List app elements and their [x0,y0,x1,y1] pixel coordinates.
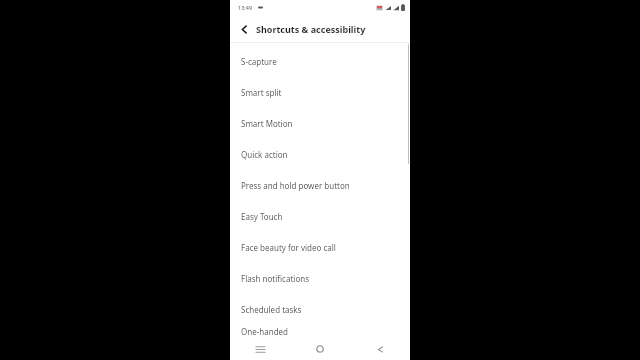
button[interactable]: Smart split [230,77,410,108]
staticText: 13:49 [238,4,253,11]
staticText: Easy Touch [241,211,283,222]
button[interactable]: Back [350,338,410,360]
button[interactable]: One-handed [230,325,410,338]
button[interactable]: Face beauty for video call [230,232,410,263]
button[interactable]: Home [290,338,350,360]
staticText: Flash notifications [241,273,310,284]
button[interactable]: Press and hold power button [230,170,410,201]
button[interactable]: Smart Motion [230,108,410,139]
staticText: Quick action [241,149,288,160]
staticText: Scheduled tasks [241,304,302,315]
staticText: Shortcuts & accessibility [256,23,366,35]
staticText: Smart Motion [241,118,293,129]
button[interactable]: Recent apps [230,338,290,360]
button[interactable]: S-capture [230,46,410,77]
button[interactable]: Flash notifications [230,263,410,294]
button[interactable]: Easy Touch [230,201,410,232]
staticText: Face beauty for video call [241,242,336,253]
button[interactable]: Scheduled tasks [230,294,410,325]
staticText: One-handed [241,326,289,337]
staticText: S-capture [241,56,277,67]
button[interactable]: Quick action [230,139,410,170]
staticText: Press and hold power button [241,180,350,191]
staticText: Smart split [241,87,282,98]
button[interactable]: Back [234,19,254,39]
